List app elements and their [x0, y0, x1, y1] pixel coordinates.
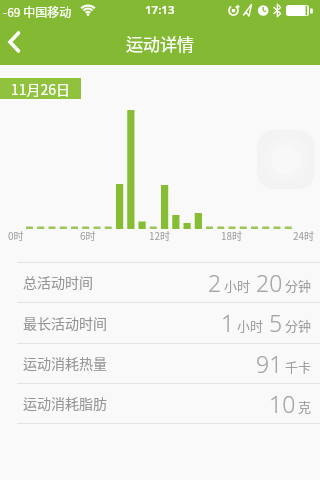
staticText: 20	[256, 267, 283, 298]
staticText: 最长活动时间	[23, 313, 107, 333]
staticText: 分钟	[285, 316, 312, 335]
staticText: 小时	[224, 276, 251, 295]
staticText: 千卡	[285, 357, 312, 376]
staticText: 总活动时间	[23, 272, 93, 292]
staticText: 91	[256, 348, 283, 379]
staticText: 5	[269, 307, 283, 338]
staticText: 分钟	[285, 276, 312, 295]
staticText: 18时	[221, 228, 243, 242]
staticText: 2	[208, 267, 222, 298]
staticText: -69 中国移动	[3, 3, 72, 20]
staticText: 10	[269, 388, 296, 419]
button[interactable]	[0, 22, 52, 65]
staticText: 1	[221, 307, 235, 338]
staticText: 17:13	[145, 2, 175, 18]
staticText: 6时	[80, 228, 96, 242]
button[interactable]: 最长活动时间	[0, 302, 320, 343]
staticText: 11月26日	[11, 79, 71, 99]
button[interactable]: 总活动时间	[0, 262, 320, 302]
button[interactable]: 运动消耗脂肪	[0, 383, 320, 423]
button[interactable]: 运动消耗热量	[0, 343, 320, 383]
staticText: 0时	[8, 228, 24, 242]
staticText: 克	[298, 397, 312, 416]
button[interactable]: 11月26日	[0, 78, 81, 99]
staticText: 小时	[237, 316, 264, 335]
staticText: 24时	[293, 228, 315, 242]
staticText: 运动详情	[126, 31, 194, 56]
staticText: 运动消耗脂肪	[23, 393, 107, 413]
staticText: 12时	[149, 228, 171, 242]
staticText: 运动消耗热量	[23, 353, 107, 373]
